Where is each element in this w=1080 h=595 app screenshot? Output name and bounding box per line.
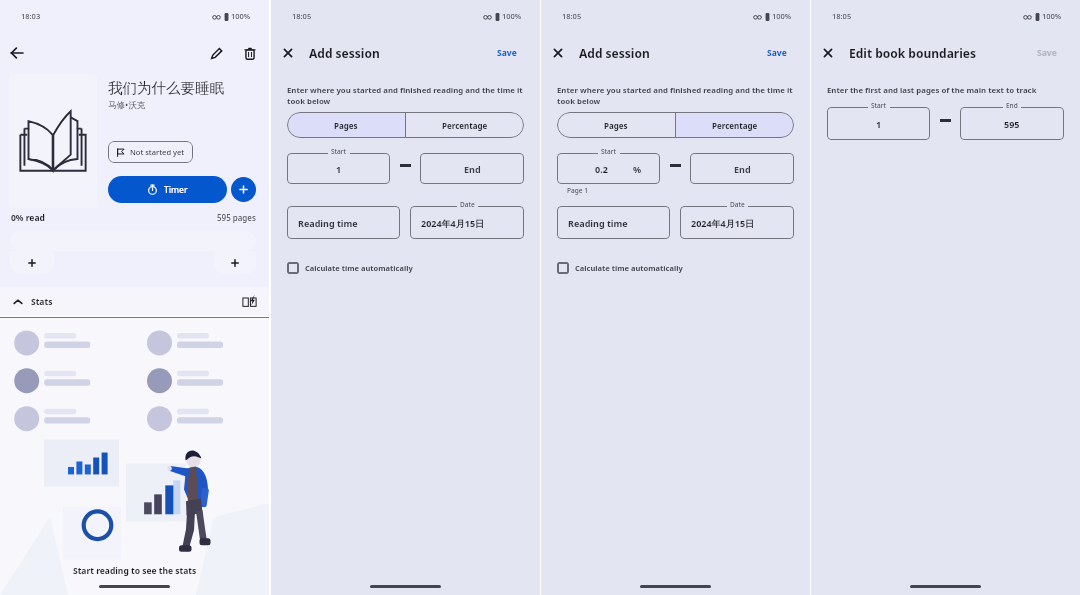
staticText: 0.2 (595, 163, 608, 175)
staticText: Add session (579, 45, 650, 61)
staticText: Timer (164, 184, 188, 196)
staticText: Reading time (568, 217, 628, 229)
button[interactable]: Stats (0, 287, 269, 316)
staticText: Edit book boundaries (849, 45, 976, 61)
button[interactable]: Save (759, 43, 795, 63)
button[interactable]: Close (541, 36, 575, 70)
staticText: Save (1037, 47, 1057, 59)
button[interactable]: Close (811, 36, 845, 70)
staticText: Enter where you started and finished rea… (287, 85, 524, 107)
staticText: 100% (1042, 11, 1062, 21)
staticText: 马修•沃克 (108, 99, 146, 111)
button[interactable]: Pages (287, 112, 405, 138)
button[interactable] (9, 74, 97, 208)
button[interactable]: Reading time (557, 206, 670, 239)
staticText: 0% read (11, 212, 45, 224)
button[interactable]: Calculate time automatically (557, 262, 683, 274)
button[interactable]: 1 (827, 107, 930, 140)
staticText: Date (460, 200, 475, 209)
staticText: Not started yet (130, 147, 185, 157)
staticText: Calculate time automatically (575, 263, 683, 273)
button[interactable]: Close (271, 36, 305, 70)
staticText: 100% (231, 11, 251, 21)
staticText: 1 (876, 118, 882, 130)
button[interactable]: Delete (233, 36, 267, 70)
button[interactable]: Timer (108, 176, 227, 203)
button[interactable]: Save (489, 43, 525, 63)
button[interactable]: Calculate time automatically (287, 262, 413, 274)
button[interactable]: End (690, 153, 794, 184)
button[interactable]: Save (1029, 43, 1065, 63)
button[interactable]: Edit (199, 36, 233, 70)
staticText: Start reading to see the stats (73, 565, 197, 577)
staticText: Calculate time automatically (305, 263, 413, 273)
button[interactable]: Percentage (406, 112, 524, 138)
button[interactable]: 1 (287, 153, 390, 184)
staticText: 18:03 (21, 11, 41, 21)
staticText: Pages (334, 120, 358, 131)
staticText: 100% (502, 11, 522, 21)
staticText: Percentage (442, 120, 488, 131)
button[interactable]: Reading time (287, 206, 400, 239)
staticText: 595 pages (217, 212, 256, 223)
staticText: 18:05 (562, 11, 582, 21)
button[interactable]: Percentage (676, 112, 794, 138)
staticText: Stats (31, 296, 53, 308)
button[interactable]: 2024年4月15日 (410, 206, 524, 239)
staticText: Save (497, 47, 517, 59)
staticText: Pages (604, 120, 628, 131)
staticText: Save (767, 47, 787, 59)
staticText: 我们为什么要睡眠 (108, 79, 224, 97)
button[interactable]: Not started yet (108, 141, 193, 163)
staticText: Start (871, 101, 887, 110)
staticText: Date (730, 200, 745, 209)
staticText: Percentage (712, 120, 758, 131)
staticText: Enter the first and last pages of the ma… (827, 85, 1037, 96)
staticText: Enter where you started and finished rea… (557, 85, 794, 107)
staticText: 18:05 (292, 11, 312, 21)
staticText: Reading time (298, 217, 358, 229)
staticText: Start (601, 147, 617, 156)
staticText: End (464, 163, 481, 175)
button[interactable]: Back (0, 36, 34, 70)
staticText: End (1006, 101, 1018, 110)
button[interactable]: Add session (231, 177, 256, 202)
staticText: % (633, 163, 642, 175)
staticText: 595 (1004, 118, 1020, 130)
staticText: 2024年4月15日 (421, 217, 485, 229)
button[interactable]: End (420, 153, 524, 184)
button[interactable]: Add at end (214, 251, 256, 274)
staticText: 100% (772, 11, 792, 21)
button[interactable]: 2024年4月15日 (680, 206, 794, 239)
button[interactable]: 595 (960, 107, 1064, 140)
staticText: End (734, 163, 751, 175)
button[interactable]: Add at start (10, 251, 54, 274)
staticText: Page 1 (567, 186, 588, 195)
staticText: 1 (336, 163, 342, 175)
button[interactable]: 0.2 (557, 153, 660, 184)
staticText: Start (331, 147, 347, 156)
staticText: Add session (309, 45, 380, 61)
staticText: 18:05 (832, 11, 852, 21)
staticText: 2024年4月15日 (691, 217, 755, 229)
button[interactable]: Pages (557, 112, 675, 138)
